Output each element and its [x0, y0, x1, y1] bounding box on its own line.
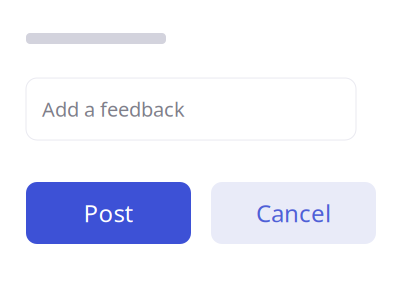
staticText: Add a feedback — [42, 96, 185, 122]
button[interactable]: Cancel — [211, 182, 376, 244]
staticText: Post — [83, 197, 133, 229]
button[interactable]: Post — [26, 182, 191, 244]
staticText: Cancel — [256, 197, 331, 229]
